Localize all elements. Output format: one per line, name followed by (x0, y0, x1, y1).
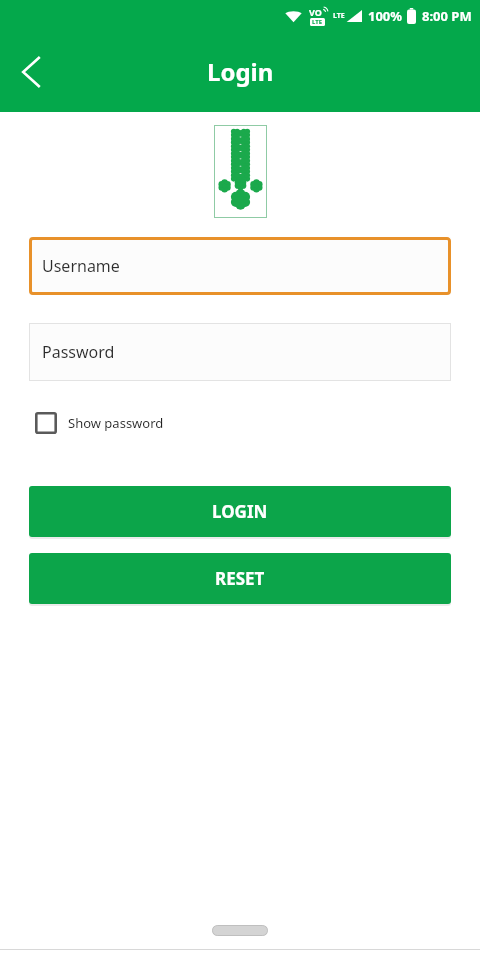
staticText: LTE (333, 11, 345, 21)
button[interactable]: LOGIN (29, 486, 451, 537)
button[interactable]: Home (212, 925, 268, 936)
staticText: Show password (68, 414, 164, 432)
staticText: LTE (312, 18, 323, 26)
button[interactable]: RESET (29, 553, 451, 604)
staticText: Username (42, 255, 120, 277)
staticText: 8:00 PM (422, 7, 472, 25)
button[interactable]: Password (29, 323, 451, 381)
button[interactable]: Username (29, 237, 451, 295)
staticText: LOGIN (212, 500, 268, 523)
button[interactable]: Back (6, 46, 58, 98)
staticText: 100% (368, 7, 403, 25)
staticText: Login (207, 55, 274, 88)
staticText: VO (309, 6, 322, 18)
staticText: RESET (215, 567, 265, 590)
staticText: Password (42, 341, 115, 363)
button[interactable]: Show password (29, 406, 164, 440)
